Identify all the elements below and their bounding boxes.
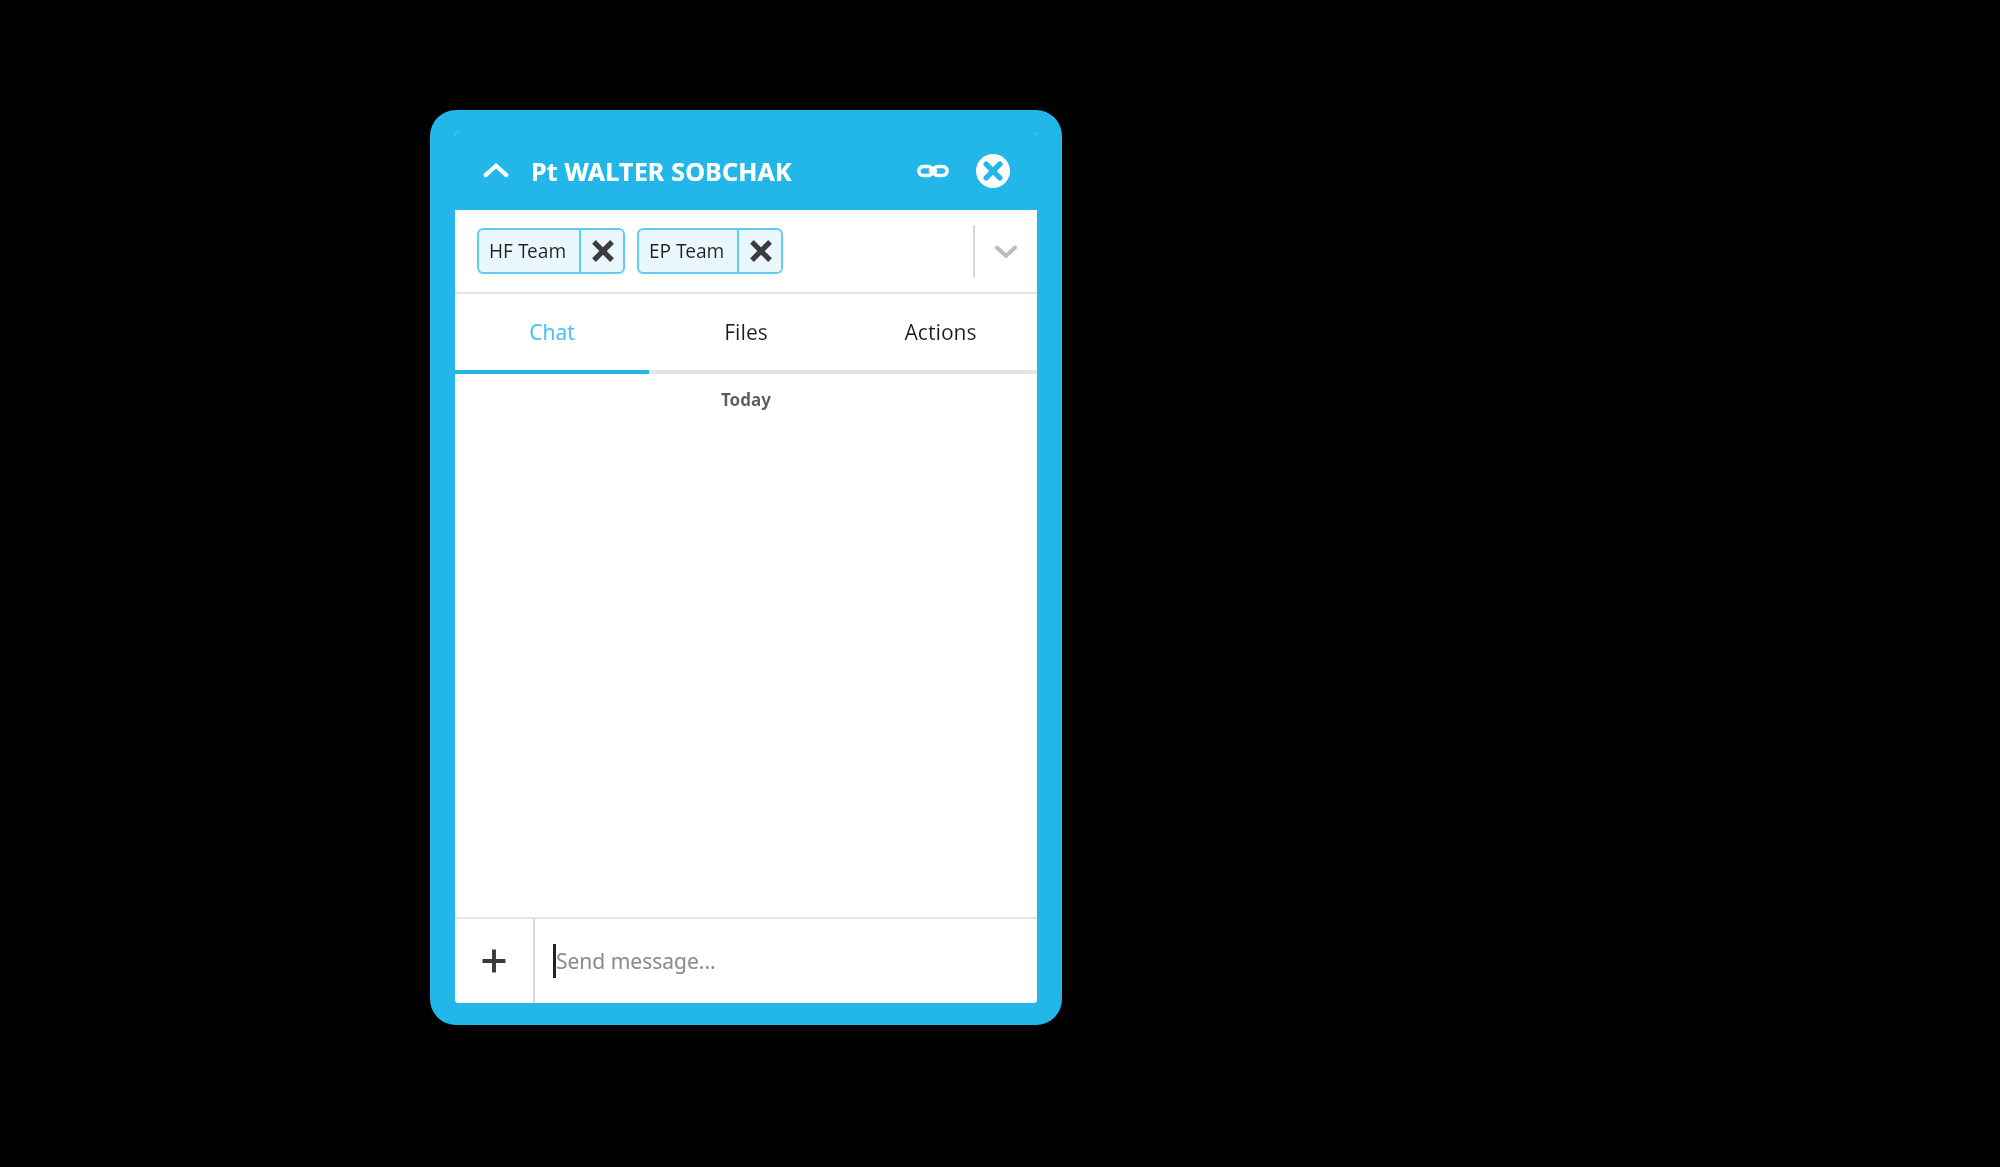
button[interactable]: Close (969, 147, 1017, 195)
staticText: HF Team (489, 238, 567, 264)
button[interactable]: EP Team (649, 228, 725, 274)
button[interactable]: Copy link (909, 147, 957, 195)
staticText: Files (724, 318, 768, 347)
staticText: Pt WALTER SOBCHAK (531, 154, 792, 188)
button[interactable]: Pt WALTER SOBCHAK (531, 154, 792, 188)
button[interactable]: Send message... (535, 919, 1037, 1003)
button[interactable]: Files (649, 294, 843, 370)
staticText: EP Team (649, 238, 725, 264)
button[interactable]: Collapse (473, 148, 519, 194)
button[interactable]: Chat (455, 294, 649, 370)
staticText: Today (721, 388, 771, 411)
button[interactable]: Show more recipients (975, 210, 1037, 292)
button[interactable]: HF Team (489, 228, 567, 274)
button[interactable]: Add attachment (455, 919, 533, 1003)
button[interactable]: Remove EP Team (739, 228, 783, 274)
staticText: Actions (904, 318, 977, 347)
staticText: Chat (529, 318, 575, 347)
button[interactable]: Actions (843, 294, 1037, 370)
staticText: Send message... (556, 947, 716, 976)
button[interactable]: Remove HF Team (581, 228, 625, 274)
